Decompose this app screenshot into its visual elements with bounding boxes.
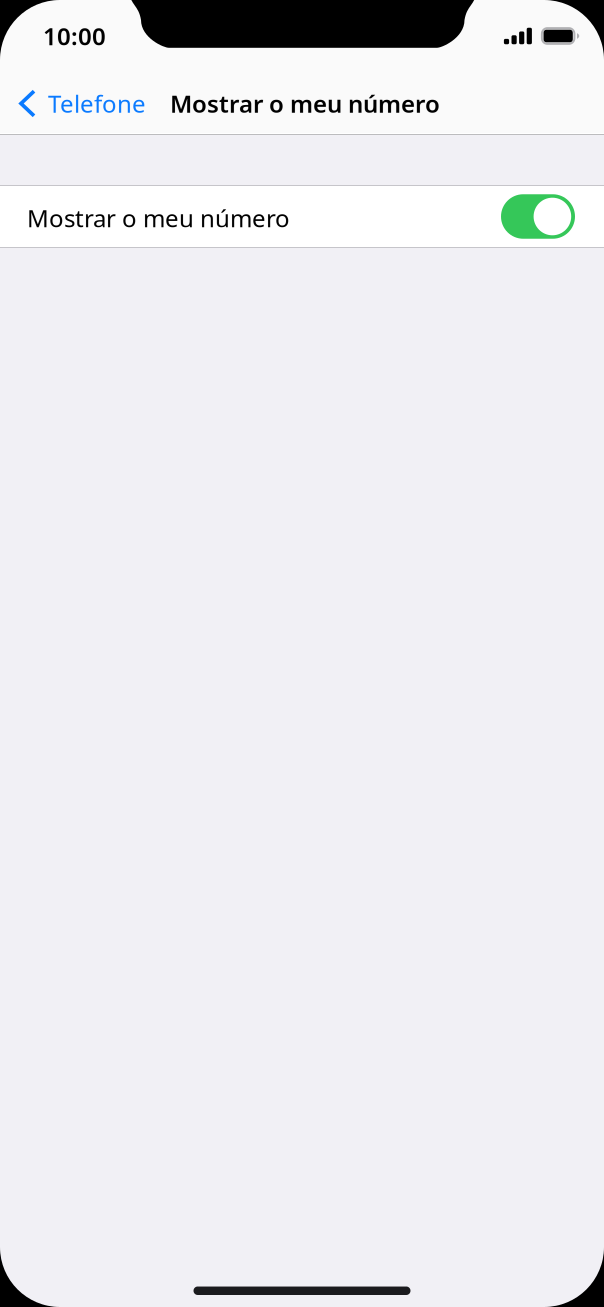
staticText: Mostrar o meu número — [27, 202, 290, 234]
button[interactable]: Mostrar o meu número — [501, 194, 575, 239]
button[interactable]: Telefone — [0, 58, 154, 134]
button[interactable]: Mostrar o meu número — [0, 186, 604, 247]
staticText: 10:00 — [43, 20, 106, 52]
staticText: Telefone — [48, 88, 146, 119]
staticText: Mostrar o meu número — [170, 88, 440, 119]
